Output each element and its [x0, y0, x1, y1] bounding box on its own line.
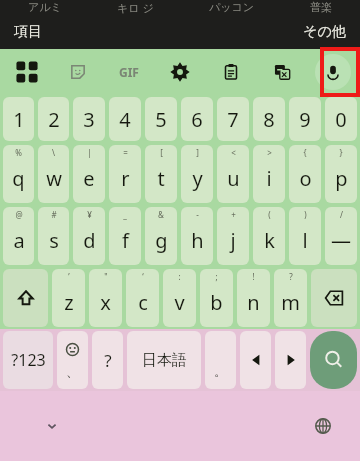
button[interactable]: Emoji [57, 331, 88, 389]
button[interactable]: ) [289, 207, 321, 265]
button[interactable]: _ [109, 207, 141, 265]
staticText: GIF [119, 64, 139, 80]
button[interactable]: Backspace [311, 269, 357, 327]
button[interactable]: : [163, 269, 196, 327]
staticText: z [64, 289, 74, 316]
button[interactable]: 。 [205, 331, 236, 389]
button[interactable]: ; [200, 269, 233, 327]
button[interactable]: 1 [3, 97, 34, 141]
button[interactable]: Translate [262, 52, 302, 92]
button[interactable]: ?123 [3, 331, 53, 389]
button[interactable]: = [109, 145, 141, 203]
staticText: キロ ジ [117, 0, 154, 14]
button[interactable]: 7 [217, 97, 249, 141]
button[interactable]: その他 [303, 23, 360, 41]
staticText: 項目 [14, 23, 42, 41]
staticText: > [267, 147, 272, 158]
staticText: p [335, 165, 348, 192]
button[interactable]: Shift [3, 269, 48, 327]
button[interactable]: ( [253, 207, 285, 265]
button[interactable]: # [38, 207, 69, 265]
staticText: 6 [191, 106, 203, 133]
staticText: 普楽 [310, 0, 332, 14]
button[interactable]: \ [38, 145, 69, 203]
staticText: ¥ [87, 209, 92, 220]
button[interactable]: Hide keyboard [35, 409, 69, 443]
button[interactable]: @ [3, 207, 34, 265]
button[interactable]: { [289, 145, 321, 203]
button[interactable]: 5 [145, 97, 177, 141]
staticText: h [191, 227, 204, 254]
staticText: q [12, 165, 25, 192]
button[interactable]: ‘ [126, 269, 159, 327]
button[interactable]: 3 [73, 97, 105, 141]
staticText: 3 [83, 106, 95, 133]
staticText: ) [304, 209, 307, 220]
button[interactable]: ! [237, 269, 270, 327]
staticText: その他 [303, 23, 346, 41]
staticText: % [15, 147, 22, 158]
staticText: x [100, 289, 111, 316]
staticText: j [230, 227, 236, 254]
staticText: y [192, 165, 203, 192]
button[interactable]: Move cursor left [240, 331, 271, 389]
staticText: 5 [155, 106, 167, 133]
staticText: ] [196, 147, 199, 158]
staticText: 9 [299, 106, 311, 133]
staticText: : [178, 271, 181, 282]
button[interactable]: Stickers [58, 52, 98, 92]
button[interactable]: < [217, 145, 249, 203]
button[interactable]: 4 [109, 97, 141, 141]
staticText: / [340, 209, 343, 220]
button[interactable]: 8 [253, 97, 285, 141]
button[interactable]: + [217, 207, 249, 265]
staticText: | [87, 147, 92, 158]
button[interactable]: Move cursor right [275, 331, 306, 389]
button[interactable]: 2 [38, 97, 69, 141]
staticText: m [281, 289, 300, 316]
staticText: s [49, 227, 59, 254]
staticText: t [157, 165, 165, 192]
staticText: ‘ [142, 271, 144, 282]
button[interactable]: Search [310, 331, 357, 389]
staticText: ’ [68, 271, 70, 282]
staticText: f [122, 227, 129, 254]
button[interactable]: > [253, 145, 285, 203]
button[interactable]: 日本語 [127, 331, 201, 389]
staticText: ; [215, 271, 218, 282]
staticText: 日本語 [142, 351, 187, 370]
staticText: a [13, 227, 25, 254]
button[interactable]: ? [92, 331, 123, 389]
button[interactable]: ] [181, 145, 213, 203]
button[interactable]: Voice input [313, 52, 353, 92]
button[interactable]: " [89, 269, 122, 327]
button[interactable]: Settings [160, 52, 200, 92]
button[interactable]: | [73, 145, 105, 203]
button[interactable]: & [145, 207, 177, 265]
button[interactable]: } [325, 145, 357, 203]
button[interactable]: 9 [289, 97, 321, 141]
button[interactable]: GIF [109, 52, 149, 92]
button[interactable]: ’ [52, 269, 85, 327]
button[interactable]: Clipboard [211, 52, 251, 92]
button[interactable]: ? [274, 269, 307, 327]
staticText: 、 [66, 363, 79, 379]
staticText: < [231, 147, 236, 158]
button[interactable]: Apps [7, 52, 47, 92]
button[interactable]: 6 [181, 97, 213, 141]
staticText: o [299, 165, 312, 192]
button[interactable]: 項目 [0, 23, 42, 41]
button[interactable]: [ [145, 145, 177, 203]
staticText: - [196, 209, 199, 220]
staticText: パッコン [209, 0, 255, 14]
button[interactable]: 0 [325, 97, 357, 141]
staticText: c [138, 289, 148, 316]
button[interactable]: ¥ [73, 207, 105, 265]
button[interactable]: % [3, 145, 34, 203]
staticText: _ [123, 209, 127, 220]
button[interactable]: Change language [306, 409, 340, 443]
button[interactable]: / [325, 207, 357, 265]
staticText: 4 [119, 106, 131, 133]
staticText: 0 [335, 106, 347, 133]
button[interactable]: - [181, 207, 213, 265]
